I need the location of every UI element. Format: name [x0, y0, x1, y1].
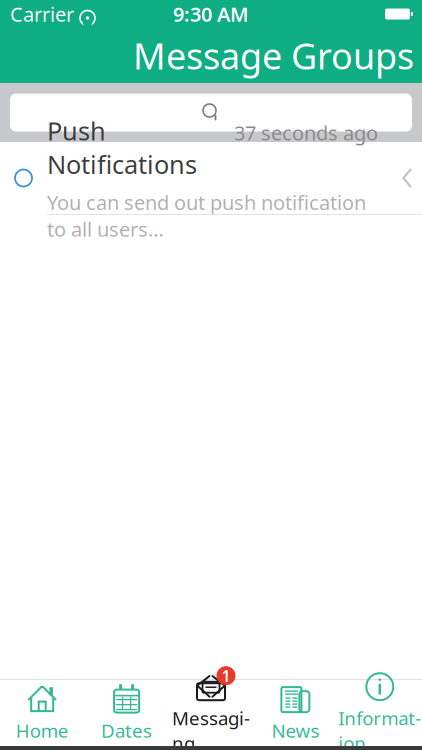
staticText: 9:30 AM — [173, 1, 249, 27]
button[interactable]: Push Notifications — [0, 142, 422, 215]
button[interactable]: Search — [10, 93, 412, 131]
button[interactable]: Dates — [84, 683, 169, 743]
staticText: You can send out push notification to al… — [47, 189, 366, 242]
button[interactable]: News — [253, 683, 338, 743]
staticText: 1 — [221, 665, 230, 686]
button[interactable]: Information — [338, 683, 422, 743]
staticText: Home — [16, 718, 69, 743]
staticText: Carrier — [10, 1, 74, 27]
staticText: Messaging — [172, 706, 250, 750]
staticText: 37 seconds ago — [234, 119, 378, 146]
staticText: News — [271, 718, 319, 743]
button[interactable]: Home — [0, 683, 84, 743]
staticText: Dates — [101, 718, 152, 743]
staticText: Push Notifications — [47, 114, 197, 181]
staticText: Information — [338, 706, 421, 750]
staticText: Message Groups — [133, 32, 414, 79]
button[interactable]: 1 — [169, 683, 253, 743]
